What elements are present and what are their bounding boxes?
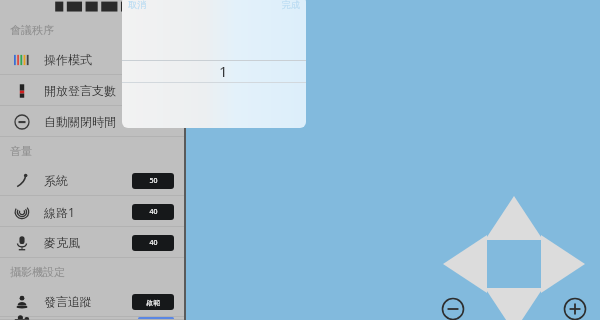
button[interactable]: 系統 — [0, 165, 184, 196]
button[interactable]: 自動關閉時間 — [0, 106, 184, 137]
button[interactable]: 發言追蹤 — [0, 286, 184, 317]
button[interactable]: Pan right — [541, 235, 585, 293]
staticText: 40 — [149, 207, 158, 217]
staticText: 完成 — [282, 0, 300, 10]
staticText: 影像壓倒 — [44, 317, 138, 320]
staticText: 音量 — [10, 144, 32, 158]
staticText: 40 — [149, 238, 158, 248]
staticText: 攝影機設定 — [10, 265, 65, 279]
staticText: 啟範 — [146, 298, 160, 307]
button[interactable]: 取消 — [128, 0, 146, 10]
button[interactable]: Tilt down — [485, 288, 543, 320]
staticText: 1 — [219, 61, 228, 81]
staticText: 50 — [149, 176, 158, 186]
button[interactable]: Zoom out — [441, 297, 465, 320]
button[interactable]: 影像壓倒 — [0, 317, 184, 320]
button[interactable]: 線路1 — [0, 196, 184, 227]
staticText: 取消 — [128, 0, 146, 10]
button[interactable]: Tilt up — [485, 196, 543, 240]
button[interactable]: 麥克風 — [0, 227, 184, 258]
staticText: 發言追蹤 — [44, 294, 132, 309]
staticText: 操作模式 — [44, 52, 174, 67]
button[interactable]: 開放登言支數 — [0, 75, 184, 106]
staticText: 麥克風 — [44, 235, 132, 250]
button[interactable]: Zoom in — [563, 297, 587, 320]
staticText: 自動關閉時間 — [44, 114, 174, 129]
staticText: 系統 — [44, 173, 132, 188]
button[interactable]: 完成 — [282, 0, 300, 10]
button[interactable]: 操作模式 — [0, 44, 184, 75]
staticText: 線路1 — [44, 204, 132, 220]
staticText: 會議秩序 — [10, 23, 54, 37]
button[interactable]: Pan left — [443, 235, 487, 293]
staticText: 開放登言支數 — [44, 83, 174, 98]
